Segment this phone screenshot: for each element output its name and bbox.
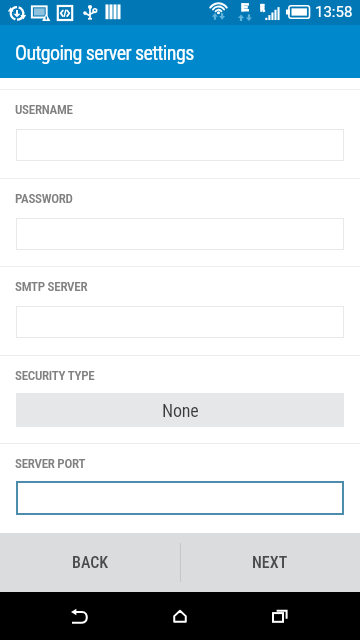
button[interactable]: Home bbox=[140, 592, 220, 640]
staticText: USERNAME bbox=[15, 102, 73, 117]
staticText: SERVER PORT bbox=[15, 456, 86, 471]
staticText: Outgoing server settings bbox=[15, 41, 194, 64]
button[interactable]: NEXT bbox=[180, 533, 360, 592]
staticText: SMTP SERVER bbox=[15, 279, 88, 294]
staticText: 13:58 bbox=[315, 3, 353, 21]
button[interactable]: Back bbox=[40, 592, 120, 640]
button[interactable]: None bbox=[16, 393, 344, 427]
button[interactable] bbox=[16, 481, 344, 515]
staticText: None bbox=[162, 400, 199, 421]
button[interactable]: Recent apps bbox=[240, 592, 320, 640]
staticText: BACK bbox=[72, 553, 109, 572]
button[interactable]: BACK bbox=[0, 533, 180, 592]
staticText: PASSWORD bbox=[15, 191, 73, 206]
staticText: NEXT bbox=[252, 553, 288, 572]
button[interactable] bbox=[16, 306, 344, 338]
button[interactable] bbox=[16, 129, 344, 161]
staticText: SECURITY TYPE bbox=[15, 368, 95, 383]
button[interactable] bbox=[16, 218, 344, 250]
